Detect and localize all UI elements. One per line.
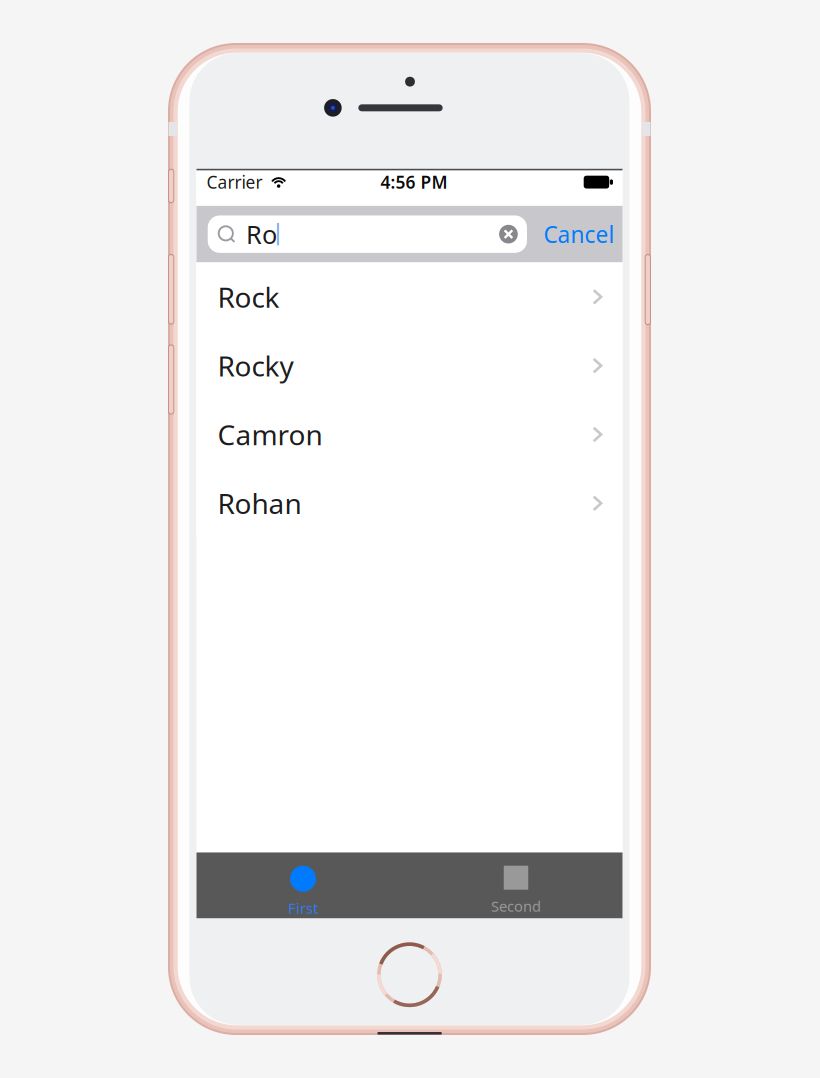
staticText: Rohan: [218, 485, 302, 522]
button[interactable]: Camron: [196, 400, 622, 469]
staticText: Cancel: [543, 219, 614, 249]
staticText: Ro: [246, 217, 277, 251]
button[interactable]: Rohan: [196, 469, 622, 538]
button[interactable]: Cancel: [539, 213, 619, 255]
staticText: Camron: [218, 416, 323, 453]
button[interactable]: Rock: [196, 262, 622, 331]
button[interactable]: First: [196, 852, 409, 918]
staticText: First: [288, 898, 318, 918]
staticText: 4:56 PM: [380, 171, 447, 194]
staticText: Rocky: [218, 347, 294, 384]
staticText: Carrier: [206, 171, 262, 194]
button[interactable]: Second: [409, 852, 622, 918]
staticText: Rock: [218, 278, 280, 315]
staticText: Second: [491, 896, 541, 916]
button[interactable]: Rocky: [196, 331, 622, 400]
